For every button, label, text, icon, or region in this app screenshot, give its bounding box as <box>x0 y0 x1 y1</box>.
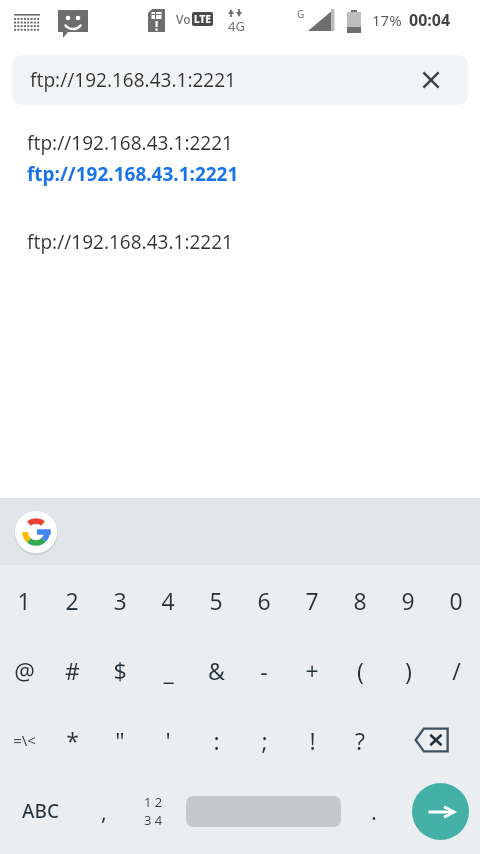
staticText: ftp://192.168.43.1:2221 <box>30 67 236 93</box>
button[interactable]: * <box>48 705 96 775</box>
button[interactable]: . <box>348 775 400 847</box>
button[interactable]: 4 <box>144 565 192 635</box>
button[interactable]: 8 <box>336 565 384 635</box>
staticText: 2 <box>65 585 79 616</box>
button[interactable]: # <box>48 635 96 705</box>
staticText: ftp://192.168.43.1:2221 <box>27 161 239 187</box>
button[interactable]: & <box>192 635 240 705</box>
button[interactable]: =\< <box>0 705 48 775</box>
staticText: ; <box>261 725 268 756</box>
staticText: + <box>305 655 319 686</box>
staticText: # <box>65 655 80 686</box>
staticText: / <box>452 655 461 686</box>
staticText: 1 <box>17 585 31 616</box>
staticText: ftp://192.168.43.1:2221 <box>27 130 233 156</box>
staticText: 5 <box>209 585 223 616</box>
button[interactable]: 0 <box>432 565 480 635</box>
staticText: 1 2 <box>144 793 163 811</box>
button[interactable]: ' <box>144 705 192 775</box>
staticText: @ <box>14 655 35 686</box>
button[interactable]: ftp://192.168.43.1:2221 <box>0 226 480 257</box>
button[interactable]: 7 <box>288 565 336 635</box>
staticText: 3 <box>113 585 127 616</box>
staticText: - <box>260 655 268 686</box>
button[interactable]: ftp://192.168.43.1:2221 <box>0 127 480 158</box>
button[interactable]: Numbers <box>127 775 179 847</box>
staticText: 00:04 <box>409 9 451 31</box>
button[interactable]: Space <box>179 775 348 847</box>
staticText: & <box>208 655 225 686</box>
button[interactable]: @ <box>0 635 48 705</box>
staticText: 9 <box>401 585 415 616</box>
staticText: . <box>371 796 377 826</box>
button[interactable]: ( <box>336 635 384 705</box>
button[interactable]: + <box>288 635 336 705</box>
staticText: , <box>101 796 107 826</box>
button[interactable]: _ <box>144 635 192 705</box>
button[interactable]: " <box>96 705 144 775</box>
staticText: $ <box>113 655 127 686</box>
button[interactable]: ) <box>384 635 432 705</box>
staticText: 3 4 <box>144 811 163 829</box>
button[interactable]: / <box>432 635 480 705</box>
staticText: 6 <box>257 585 271 616</box>
button[interactable]: ? <box>336 705 384 775</box>
button[interactable]: 1 <box>0 565 48 635</box>
staticText: 7 <box>305 585 319 616</box>
button[interactable]: Google Search <box>14 510 58 554</box>
button[interactable]: , <box>80 775 127 847</box>
staticText: ABC <box>22 798 59 824</box>
staticText: ( <box>357 655 364 686</box>
staticText: Vo <box>176 11 191 27</box>
staticText: ! <box>309 725 316 756</box>
staticText: LTE <box>194 12 211 26</box>
button[interactable]: : <box>192 705 240 775</box>
staticText: ? <box>355 725 365 756</box>
staticText: 0 <box>449 585 463 616</box>
button[interactable]: ; <box>240 705 288 775</box>
staticText: ftp://192.168.43.1:2221 <box>27 229 233 255</box>
button[interactable]: ABC <box>0 775 80 847</box>
button[interactable]: Backspace <box>384 705 480 775</box>
button[interactable]: ftp://192.168.43.1:2221 <box>0 158 480 189</box>
button[interactable]: 6 <box>240 565 288 635</box>
button[interactable]: 2 <box>48 565 96 635</box>
staticText: 4G <box>228 17 245 35</box>
button[interactable]: 3 <box>96 565 144 635</box>
staticText: 17% <box>372 10 402 30</box>
staticText: ) <box>405 655 412 686</box>
button[interactable]: Clear <box>414 63 448 97</box>
button[interactable]: ftp://192.168.43.1:2221 <box>12 55 468 105</box>
staticText: 8 <box>353 585 367 616</box>
staticText: ' <box>165 725 171 756</box>
staticText: : <box>213 725 220 756</box>
button[interactable]: ! <box>288 705 336 775</box>
staticText: * <box>66 725 79 756</box>
button[interactable]: Enter <box>400 775 480 847</box>
staticText: G <box>297 7 305 21</box>
staticText: 4 <box>161 585 175 616</box>
button[interactable]: 9 <box>384 565 432 635</box>
staticText: " <box>115 725 125 756</box>
staticText: =\< <box>13 730 36 750</box>
button[interactable]: 5 <box>192 565 240 635</box>
button[interactable]: - <box>240 635 288 705</box>
button[interactable]: $ <box>96 635 144 705</box>
staticText: _ <box>163 655 174 686</box>
